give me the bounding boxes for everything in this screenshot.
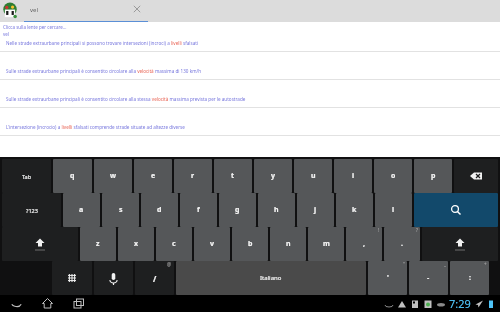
button[interactable]: p: [414, 159, 452, 193]
button[interactable]: w: [94, 159, 132, 193]
button[interactable]: ,: [346, 227, 382, 261]
button[interactable]: ': [368, 261, 407, 295]
button[interactable]: Backspace: [454, 159, 498, 193]
staticText: a: [79, 205, 84, 215]
button[interactable]: vel: [24, 6, 148, 17]
staticText: ?: [416, 227, 418, 233]
button[interactable]: i: [334, 159, 372, 193]
button[interactable]: n: [270, 227, 306, 261]
staticText: k: [352, 205, 357, 215]
staticText: u: [311, 171, 316, 181]
staticText: g: [235, 205, 240, 215]
button[interactable]: Tab: [2, 159, 51, 193]
staticText: 7:29: [449, 296, 471, 311]
staticText: z: [96, 239, 100, 249]
staticText: f: [197, 205, 200, 215]
button[interactable]: Sulle strade extraurbane principali è co…: [6, 68, 201, 74]
staticText: d: [157, 205, 162, 215]
staticText: ": [403, 261, 405, 267]
staticText: e: [151, 171, 156, 181]
staticText: vel: [3, 31, 9, 37]
staticText: ,: [363, 239, 365, 249]
button[interactable]: e: [134, 159, 172, 193]
staticText: s: [119, 205, 123, 215]
staticText: Tab: [22, 173, 32, 180]
button[interactable]: q: [53, 159, 92, 193]
button[interactable]: s: [102, 193, 139, 227]
staticText: t: [231, 171, 235, 181]
button[interactable]: Shift: [2, 227, 78, 261]
staticText: o: [391, 171, 396, 181]
staticText: r: [191, 171, 195, 181]
button[interactable]: b: [232, 227, 268, 261]
staticText: q: [70, 171, 75, 181]
staticText: v: [210, 239, 214, 249]
button[interactable]: -: [409, 261, 448, 295]
staticText: w: [110, 171, 116, 181]
button[interactable]: Recent apps: [70, 295, 87, 312]
button[interactable]: t: [214, 159, 252, 193]
staticText: x: [134, 239, 139, 249]
button[interactable]: Shift: [422, 227, 498, 261]
button[interactable]: Italiano: [176, 261, 366, 295]
staticText: n: [286, 239, 291, 249]
button[interactable]: Sulle strade extraurbane principali è co…: [6, 96, 246, 102]
staticText: -: [427, 273, 430, 283]
button[interactable]: r: [174, 159, 212, 193]
button[interactable]: x: [118, 227, 154, 261]
staticText: m: [323, 239, 330, 249]
staticText: _: [444, 261, 446, 267]
button[interactable]: Clear search: [132, 4, 142, 14]
staticText: y: [271, 171, 275, 181]
button[interactable]: /: [135, 261, 174, 295]
button[interactable]: g: [219, 193, 256, 227]
staticText: c: [172, 239, 176, 249]
button[interactable]: o: [374, 159, 412, 193]
staticText: !: [378, 227, 380, 233]
button[interactable]: d: [141, 193, 178, 227]
button[interactable]: u: [294, 159, 332, 193]
button[interactable]: Nelle strade extraurbane principali si p…: [6, 40, 199, 46]
button[interactable]: z: [80, 227, 116, 261]
staticText: vel: [30, 6, 38, 14]
button[interactable]: m: [308, 227, 344, 261]
button[interactable]: k: [336, 193, 373, 227]
button[interactable]: c: [156, 227, 192, 261]
button[interactable]: f: [180, 193, 217, 227]
button[interactable]: Voice input: [94, 261, 133, 295]
button[interactable]: j: [297, 193, 334, 227]
staticText: Clicca sulla lente per cercare...: [3, 24, 67, 30]
button[interactable]: a: [63, 193, 100, 227]
button[interactable]: v: [194, 227, 230, 261]
button[interactable]: L'intersezione (incrocio) a livelli sfal…: [6, 124, 185, 130]
staticText: +: [484, 261, 487, 267]
staticText: .: [401, 239, 403, 249]
button[interactable]: Search: [414, 193, 498, 227]
staticText: :: [469, 273, 471, 283]
staticText: p: [431, 171, 436, 181]
staticText: j: [314, 205, 317, 215]
staticText: l: [392, 205, 395, 215]
button[interactable]: y: [254, 159, 292, 193]
button[interactable]: ?123: [2, 193, 61, 227]
button[interactable]: :: [450, 261, 489, 295]
staticText: /: [153, 273, 157, 284]
staticText: h: [274, 205, 279, 215]
staticText: b: [248, 239, 253, 249]
staticText: i: [352, 171, 355, 181]
button[interactable]: .: [384, 227, 420, 261]
staticText: ?123: [26, 207, 38, 214]
button[interactable]: h: [258, 193, 295, 227]
button[interactable]: Home: [39, 295, 56, 312]
staticText: @: [167, 261, 172, 267]
staticText: Italiano: [260, 274, 282, 282]
button[interactable]: Hide keyboard: [8, 295, 25, 312]
button[interactable]: l: [375, 193, 412, 227]
button[interactable]: Keyboard settings: [52, 261, 92, 295]
staticText: ': [387, 273, 389, 283]
